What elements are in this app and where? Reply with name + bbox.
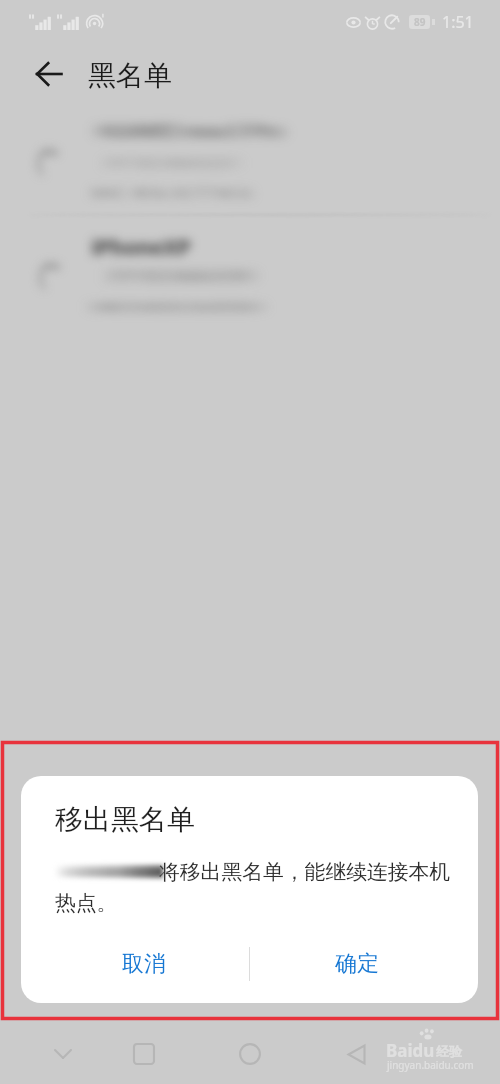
- staticText: HUAWEI nova 5 Pro: [97, 117, 280, 144]
- staticText: IP: 192.168.43.109: [101, 265, 239, 287]
- staticText: 89: [414, 15, 426, 29]
- staticText: Baidu: [386, 1039, 435, 1062]
- staticText: MAC: 9e:35:c1:0a:7b:54: [95, 296, 258, 316]
- staticText: 将移出黑名单，能继续连接本机热点。: [55, 857, 454, 916]
- staticText: 1:51: [442, 11, 474, 33]
- staticText: iPhoneXP: [90, 233, 190, 262]
- staticText: IP: 192.168.43.109: [124, 265, 262, 287]
- staticText: jingyan.baidu.com: [387, 1058, 474, 1072]
- staticText: MAC: 48:bc:42:77:9d:2c: [88, 182, 250, 202]
- staticText: IP: 192.168.43.109: [112, 265, 250, 287]
- staticText: MAC: 9e:35:c1:0a:7b:54: [103, 296, 266, 316]
- button[interactable]: Back: [314, 1024, 398, 1084]
- staticText: IP: 192.168.43.221: [103, 152, 232, 172]
- button[interactable]: 确定: [250, 936, 478, 992]
- staticText: 经验: [436, 1043, 462, 1059]
- staticText: MAC: 9e:35:c1:0a:7b:54: [84, 296, 247, 316]
- staticText: MAC: 9e:35:c1:0a:7b:54: [107, 296, 270, 316]
- staticText: IP: 192.168.43.221: [114, 152, 243, 172]
- staticText: 黑名单: [88, 58, 172, 93]
- staticText: MAC: 48:bc:42:77:9d:2c: [95, 182, 257, 202]
- staticText: HUAWEI nova 5 Pro: [108, 117, 291, 144]
- staticText: HUAWEI nova 5 Pro: [94, 117, 277, 144]
- staticText: IP: 192.168.43.221: [99, 152, 228, 172]
- staticText: HUAWEI nova 5 Pro: [104, 117, 287, 144]
- button[interactable]: Back: [25, 50, 73, 98]
- staticText: iPhoneXP: [91, 233, 191, 262]
- staticText: IP: 192.168.43.109: [120, 265, 258, 287]
- staticText: MAC: 9e:35:c1:0a:7b:54: [92, 296, 255, 316]
- staticText: MAC: 9e:35:c1:0a:7b:54: [88, 296, 251, 316]
- staticText: IP: 192.168.43.221: [107, 152, 236, 172]
- staticText: MAC: 48:bc:42:77:9d:2c: [92, 182, 254, 202]
- staticText: 确定: [335, 950, 379, 978]
- staticText: IP: 192.168.43.109: [109, 265, 247, 287]
- button[interactable]: 取消: [21, 936, 249, 992]
- staticText: 移出黑名单: [55, 802, 195, 837]
- staticText: IP: 192.168.43.221: [110, 152, 239, 172]
- staticText: HUAWEI nova 5 Pro: [90, 117, 273, 144]
- staticText: 取消: [122, 950, 166, 978]
- staticText: MAC: 48:bc:42:77:9d:2c: [90, 182, 252, 202]
- staticText: IP: 192.168.43.221: [118, 152, 247, 172]
- staticText: HUAWEI nova 5 Pro: [101, 117, 284, 144]
- staticText: iPhoneXP: [93, 233, 193, 262]
- staticText: IP: 192.168.43.109: [116, 265, 254, 287]
- staticText: IP: 192.168.43.109: [105, 265, 243, 287]
- staticText: MAC: 9e:35:c1:0a:7b:54: [99, 296, 262, 316]
- button[interactable]: Recents: [103, 1024, 184, 1084]
